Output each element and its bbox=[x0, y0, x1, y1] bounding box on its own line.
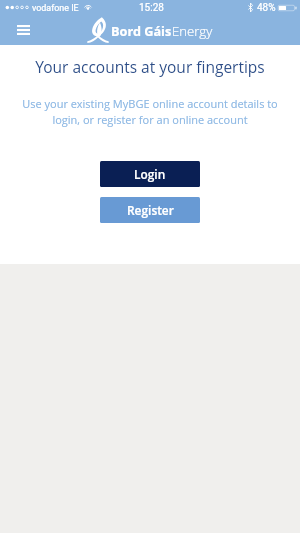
staticText: Your accounts at your fingertips bbox=[0, 56, 300, 77]
staticText: Register bbox=[127, 202, 174, 218]
staticText: Login bbox=[134, 166, 166, 182]
staticText: 15:28 bbox=[139, 2, 164, 14]
staticText: 48% bbox=[257, 2, 276, 14]
button[interactable]: Register bbox=[100, 197, 200, 223]
button[interactable]: Open navigation menu bbox=[11, 15, 35, 45]
staticText: Use your existing MyBGE online account d… bbox=[18, 96, 282, 127]
staticText: Energy bbox=[172, 22, 213, 40]
staticText: Bord Gáis bbox=[111, 22, 172, 39]
staticText: vodafone IE bbox=[32, 3, 79, 13]
button[interactable]: Login bbox=[100, 161, 200, 187]
